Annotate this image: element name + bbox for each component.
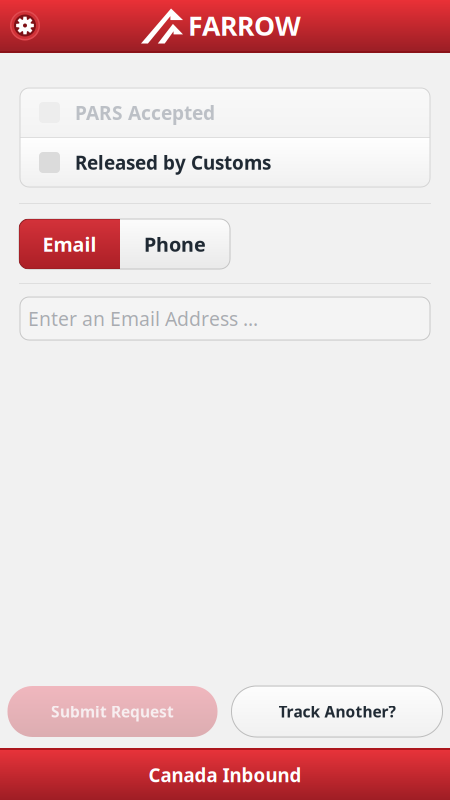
staticText: Enter an Email Address ... [28, 305, 258, 332]
staticText: PARS Accepted [75, 99, 215, 125]
staticText: Canada Inbound [148, 762, 301, 788]
button[interactable]: Track Another? [231, 686, 442, 737]
button[interactable]: PARS Accepted [20, 88, 430, 137]
button[interactable]: Settings [0, 8, 42, 42]
staticText: Submit Request [51, 701, 174, 722]
staticText: Email [42, 231, 96, 257]
button[interactable]: Enter an Email Address ... [20, 297, 430, 340]
staticText: Phone [144, 231, 206, 257]
button[interactable]: Submit Request [7, 686, 217, 737]
button[interactable]: Phone [120, 219, 230, 269]
staticText: Track Another? [278, 701, 395, 722]
staticText: Released by Customs [75, 150, 271, 175]
button[interactable]: Released by Customs [20, 138, 430, 187]
button[interactable]: Email [19, 219, 120, 269]
staticText: FARROW [188, 7, 301, 44]
